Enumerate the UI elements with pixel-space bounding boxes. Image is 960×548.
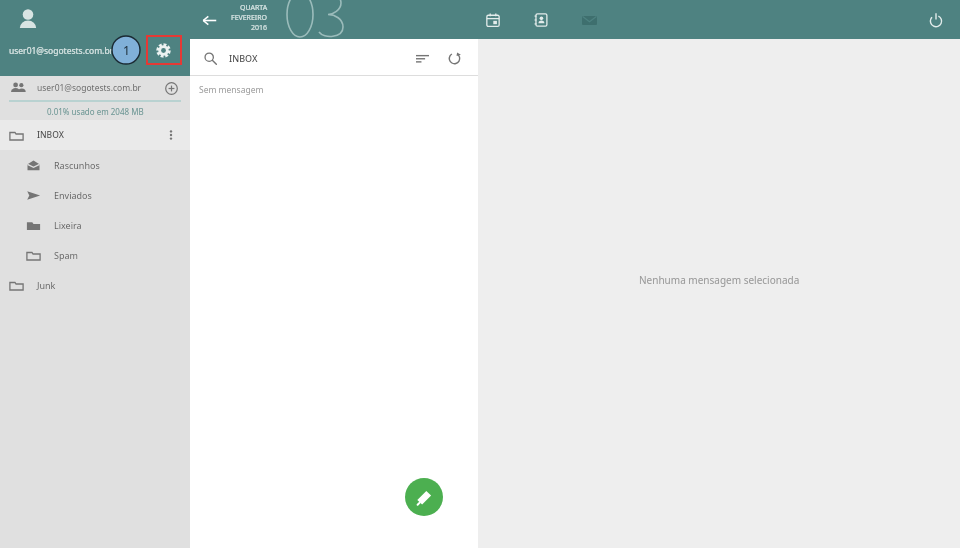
button[interactable]: Spam <box>0 240 190 270</box>
staticText: user01@sogotests.com.br <box>37 82 142 94</box>
staticText: user01@sogotests.com.br <box>9 45 114 57</box>
staticText: QUARTA <box>240 3 268 13</box>
button[interactable]: Sort <box>409 45 435 71</box>
staticText: Nenhuma mensagem selecionada <box>639 273 800 287</box>
staticText: Enviados <box>54 189 92 201</box>
button[interactable]: Enviados <box>0 180 190 210</box>
staticText: Spam <box>54 249 78 261</box>
staticText: Sem mensagem <box>199 84 264 96</box>
staticText: 0.01% usado em 2048 MB <box>47 106 144 117</box>
button[interactable]: Settings <box>147 36 179 64</box>
button[interactable]: Refresh <box>441 45 467 71</box>
staticText: 2016 <box>251 23 268 33</box>
staticText: INBOX <box>229 52 258 64</box>
button[interactable]: Contacts <box>526 5 556 35</box>
staticText: Rascunhos <box>54 159 100 171</box>
button[interactable]: Add account <box>160 77 182 99</box>
button[interactable]: Rascunhos <box>0 150 190 180</box>
staticText: Lixeira <box>54 219 82 231</box>
staticText: INBOX <box>37 129 64 141</box>
button[interactable]: Compose <box>405 478 443 516</box>
staticText: Junk <box>37 279 56 291</box>
button[interactable]: Folder options <box>158 122 184 148</box>
button[interactable]: Lixeira <box>0 210 190 240</box>
button[interactable]: Back <box>196 7 222 33</box>
button[interactable]: Junk <box>0 270 190 300</box>
staticText: FEVEREIRO <box>231 13 268 23</box>
button[interactable]: Calendar <box>478 5 508 35</box>
button[interactable]: user01@sogotests.com.br <box>0 76 190 100</box>
button[interactable]: Mail <box>574 5 604 35</box>
button[interactable]: Search <box>199 47 221 69</box>
button[interactable]: INBOX <box>0 120 190 150</box>
button[interactable]: Log out <box>921 5 951 35</box>
staticText: 1 <box>123 42 130 58</box>
